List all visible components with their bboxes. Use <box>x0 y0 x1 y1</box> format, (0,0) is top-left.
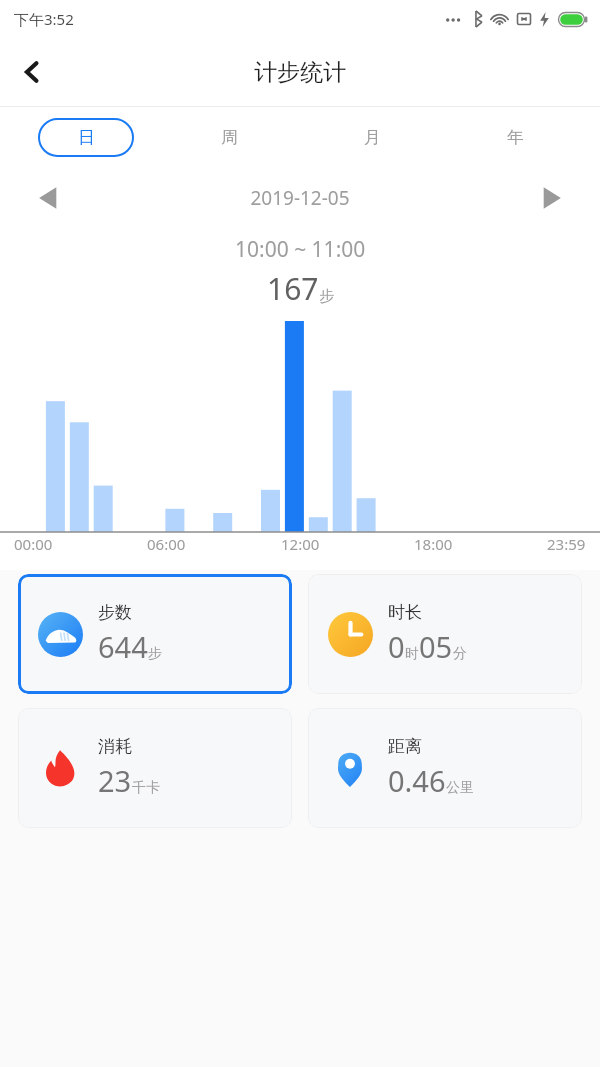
staticText: 644 <box>98 627 148 666</box>
staticText: 步 <box>148 645 162 663</box>
staticText: 千卡 <box>132 779 160 797</box>
button[interactable]: Previous day <box>20 170 76 226</box>
staticText: 23:59 <box>547 534 586 554</box>
button[interactable]: 日 <box>38 118 134 157</box>
staticText: 分 <box>453 645 467 663</box>
staticText: 步 <box>319 287 334 306</box>
staticText: 月 <box>364 127 381 148</box>
staticText: 时 <box>405 645 419 663</box>
staticText: 时长 <box>388 602 422 623</box>
staticText: 18:00 <box>414 534 453 554</box>
button[interactable]: 步数 <box>18 574 292 694</box>
staticText: 步数 <box>98 602 132 623</box>
staticText: 公里 <box>446 779 474 797</box>
staticText: 0.46 <box>388 761 446 800</box>
button[interactable]: Next day <box>524 170 580 226</box>
staticText: 日 <box>78 127 95 148</box>
staticText: 06:00 <box>147 534 186 554</box>
staticText: 12:00 <box>281 534 320 554</box>
staticText: 计步统计 <box>254 58 346 87</box>
staticText: 23 <box>98 761 132 800</box>
button[interactable]: 消耗 <box>18 708 292 828</box>
button[interactable]: 距离 <box>308 708 582 828</box>
staticText: 0 <box>388 627 405 666</box>
staticText: 05 <box>419 627 453 666</box>
button[interactable]: 时长 <box>308 574 582 694</box>
staticText: 00:00 <box>14 534 53 554</box>
staticText: 消耗 <box>98 736 132 757</box>
button[interactable]: Back <box>6 46 58 98</box>
button[interactable]: 月 <box>324 118 420 157</box>
staticText: 下午3:52 <box>14 9 74 29</box>
staticText: 周 <box>221 127 238 148</box>
staticText: 距离 <box>388 736 422 757</box>
staticText: 10:00 ~ 11:00 <box>235 235 366 264</box>
staticText: 167 <box>267 268 319 309</box>
button[interactable]: 周 <box>181 118 277 157</box>
staticText: 年 <box>507 127 524 148</box>
button[interactable]: 年 <box>467 118 563 157</box>
staticText: 2019-12-05 <box>76 185 524 211</box>
